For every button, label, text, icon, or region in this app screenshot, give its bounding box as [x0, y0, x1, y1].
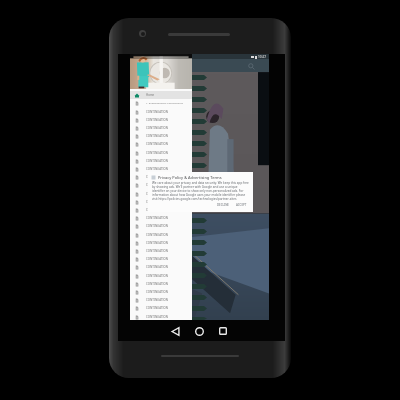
button[interactable]: Home: [189, 321, 209, 341]
staticText: We care about your privacy and data secu…: [152, 181, 250, 201]
button[interactable]: [192, 185, 207, 190]
staticText: CONTINUATION: [146, 298, 169, 302]
button[interactable]: CONTINUATION: [130, 190, 192, 198]
staticText: CONTINUATION: [146, 142, 169, 146]
button[interactable]: CONTINUATION: [130, 231, 192, 239]
button[interactable]: [192, 317, 207, 320]
staticText: 10:27: [258, 55, 267, 59]
button[interactable]: DECLINE: [216, 203, 230, 207]
button[interactable]: [192, 284, 207, 289]
button[interactable]: ACCEPT: [235, 203, 248, 207]
button[interactable]: Home: [130, 91, 192, 99]
staticText: CONTINUATION: [146, 126, 169, 130]
staticText: CONTINUATION: [146, 175, 169, 179]
button[interactable]: [192, 251, 207, 256]
button[interactable]: [192, 97, 207, 102]
button[interactable]: [192, 108, 207, 113]
button[interactable]: [192, 196, 207, 201]
staticText: CONTINUATION: [146, 290, 169, 294]
button[interactable]: CONTINUATION: [130, 304, 192, 312]
staticText: CONTINUATION: [146, 110, 169, 114]
button[interactable]: CONTINUATION: [130, 313, 192, 321]
button[interactable]: CONTINUATION: [130, 173, 192, 181]
button[interactable]: CONTINUATION: [130, 157, 192, 165]
button[interactable]: [192, 262, 207, 267]
staticText: CONTINUATION: [146, 274, 169, 278]
button[interactable]: [192, 86, 207, 91]
staticText: CONTINUATION: [146, 306, 169, 310]
button[interactable]: CONTINUATION: [130, 206, 192, 214]
button[interactable]: [192, 152, 207, 157]
button[interactable]: CONTINUATION: [130, 198, 192, 206]
button[interactable]: CONTINUATION: [130, 321, 192, 329]
staticText: CONTINUATION: [146, 208, 169, 212]
button[interactable]: CONTINUATION: [130, 181, 192, 189]
button[interactable]: CONTINUATION: [130, 132, 192, 140]
button[interactable]: [192, 163, 207, 168]
button[interactable]: CONTINUATION: [130, 239, 192, 247]
button[interactable]: [192, 174, 207, 179]
button[interactable]: Search: [248, 63, 255, 70]
button[interactable]: Recents: [213, 321, 233, 341]
staticText: CONTINUATION: [146, 241, 169, 245]
button[interactable]: [192, 295, 207, 300]
button[interactable]: CONTINUATION: [130, 280, 192, 288]
button[interactable]: [192, 75, 207, 80]
staticText: CONTINUATION: [146, 265, 169, 269]
button[interactable]: CONTINUATION: [130, 149, 192, 157]
staticText: CONTINUATION: [146, 192, 169, 196]
button[interactable]: [192, 119, 207, 124]
staticText: CONTINUATION: [146, 167, 169, 171]
staticText: CONTINUATION: [146, 200, 169, 204]
staticText: CONTINUATION: [146, 216, 169, 220]
staticText: Home: [146, 93, 155, 97]
staticText: CONTINUATION: [146, 315, 169, 319]
button[interactable]: CONTINUATION: [130, 247, 192, 255]
button[interactable]: CONTINUATION: [130, 124, 192, 132]
staticText: CONTINUATION: [146, 118, 169, 122]
button[interactable]: [192, 130, 207, 135]
button[interactable]: CONTINUATION: [130, 214, 192, 222]
staticText: Privacy Policy & Advertising Terms: [158, 175, 222, 180]
button[interactable]: CONTINUATION: [130, 255, 192, 263]
staticText: CONTINUATION: [146, 151, 169, 155]
button[interactable]: CONTINUATION: [130, 116, 192, 124]
button[interactable]: [192, 273, 207, 278]
staticText: CONTINUATION: [146, 249, 169, 253]
staticText: DECLINE: [217, 203, 229, 207]
staticText: CONTINUATION: [146, 159, 169, 163]
button[interactable]: CONTINUATION: [130, 272, 192, 280]
staticText: CONTINUATION: [146, 257, 169, 261]
staticText: ACCEPT: [236, 203, 247, 207]
button[interactable]: 1. RADIOGRAPHIC POSITIONING: [130, 99, 192, 107]
button[interactable]: CONTINUATION: [130, 222, 192, 230]
button[interactable]: [192, 229, 207, 234]
staticText: CONTINUATION: [146, 134, 169, 138]
button[interactable]: CONTINUATION: [130, 263, 192, 271]
button[interactable]: [192, 218, 207, 223]
button[interactable]: CONTINUATION: [130, 288, 192, 296]
staticText: CONTINUATION: [146, 233, 169, 237]
staticText: CONTINUATION: [146, 183, 169, 187]
button[interactable]: CONTINUATION: [130, 296, 192, 304]
staticText: CONTINUATION: [146, 224, 169, 228]
button[interactable]: CONTINUATION: [130, 108, 192, 116]
button[interactable]: [192, 240, 207, 245]
staticText: CONTINUATION: [146, 282, 169, 286]
button[interactable]: CONTINUATION: [130, 140, 192, 148]
button[interactable]: Back: [165, 321, 185, 341]
button[interactable]: [192, 141, 207, 146]
button[interactable]: CONTINUATION: [130, 165, 192, 173]
button[interactable]: [192, 306, 207, 311]
staticText: 1. RADIOGRAPHIC POSITIONING: [146, 102, 183, 105]
